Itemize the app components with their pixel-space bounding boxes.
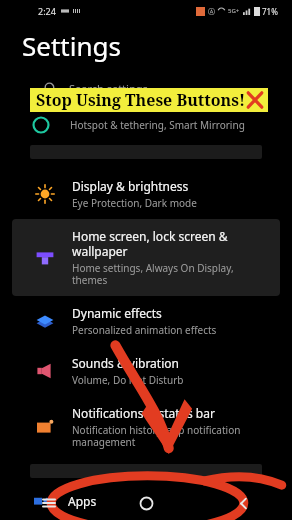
button[interactable]: Back (195, 486, 292, 520)
button[interactable]: Search (0, 75, 292, 101)
button[interactable]: Apps (0, 486, 292, 516)
button[interactable]: Home (98, 486, 195, 520)
button[interactable]: Notifications & status bar (0, 396, 292, 458)
staticText: Apps (68, 493, 97, 509)
staticText: Notifications & status bar (72, 405, 215, 421)
staticText: Settings (22, 28, 121, 63)
staticText: Search settings (69, 81, 148, 96)
staticText: Hotspot & tethering, Smart Mirroring (70, 118, 245, 132)
staticText: 71% (262, 6, 278, 17)
button[interactable]: Display & brightness (0, 169, 292, 219)
button[interactable]: Recent apps (0, 486, 98, 520)
staticText: Eye Protection, Dark mode (72, 196, 197, 210)
button[interactable]: Sounds & vibration (0, 346, 292, 396)
staticText: Volume, Do Not Disturb (72, 373, 184, 387)
staticText: 5G+ (228, 7, 240, 15)
staticText: Home settings, Always On Display, themes (72, 261, 234, 287)
button[interactable]: Stop Using These Buttons! (30, 88, 268, 112)
button[interactable]: Dynamic effects (0, 296, 292, 346)
staticText: Dynamic effects (72, 305, 162, 321)
staticText: Notification history, app notification m… (72, 423, 241, 449)
staticText: Display & brightness (72, 178, 189, 194)
other: Search (44, 82, 57, 95)
staticText: Stop Using These Buttons! (36, 89, 246, 111)
staticText: Home screen, lock screen & wallpaper (72, 228, 228, 259)
staticText: Personalized animation effects (72, 323, 217, 337)
button[interactable]: Home screen, lock screen & wallpaper (12, 219, 280, 296)
button[interactable]: Hotspot & tethering, Smart Mirroring (0, 109, 292, 141)
staticText: Ⓐ (208, 7, 215, 16)
other: Close (246, 90, 264, 110)
staticText: Sounds & vibration (72, 355, 179, 371)
staticText: 2:24 (38, 5, 56, 17)
